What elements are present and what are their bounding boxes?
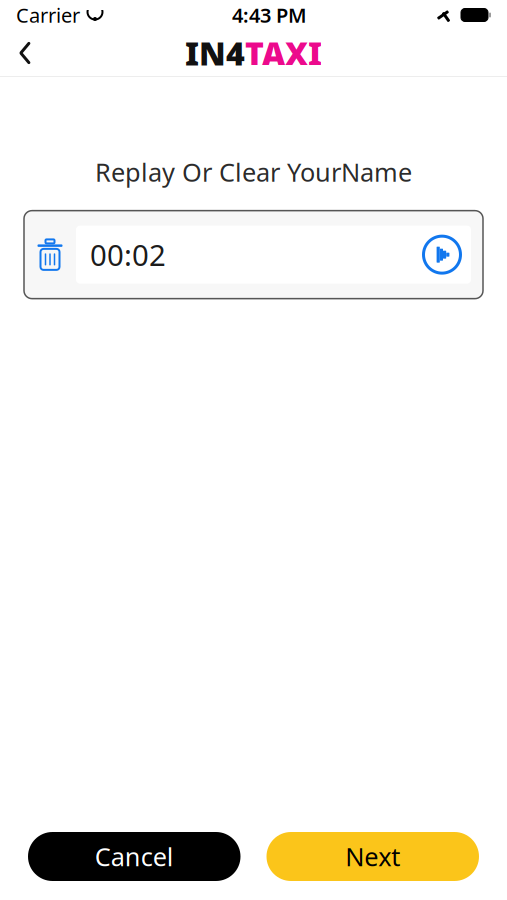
staticText: TAXI xyxy=(245,32,322,74)
staticText: Cancel xyxy=(95,840,174,873)
button[interactable]: Play recording xyxy=(419,232,465,278)
staticText: Carrier xyxy=(16,2,80,28)
staticText: 00:02 xyxy=(90,235,166,274)
button[interactable]: Back xyxy=(0,30,50,76)
button[interactable]: Delete recording xyxy=(24,226,76,284)
staticText: IN4 xyxy=(185,32,245,74)
button[interactable]: Cancel xyxy=(28,832,240,881)
staticText: Next xyxy=(345,840,400,873)
button[interactable]: Next xyxy=(266,832,479,881)
staticText: 4:43 PM xyxy=(232,2,307,28)
staticText: Replay Or Clear YourName xyxy=(95,155,412,189)
